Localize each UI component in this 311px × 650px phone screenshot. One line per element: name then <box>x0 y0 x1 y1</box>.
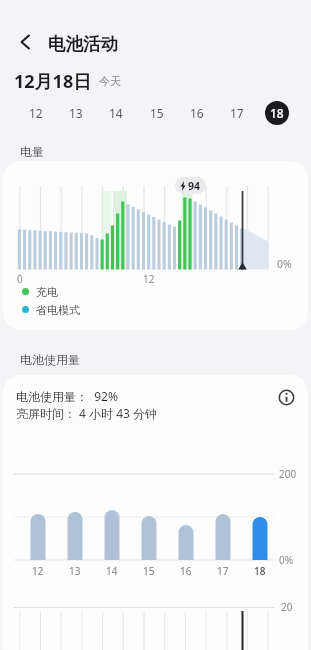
staticText: 0% <box>279 553 294 567</box>
staticText: 今天 <box>99 74 121 88</box>
staticText: 12 <box>29 105 43 121</box>
button[interactable]: 18 <box>265 101 289 125</box>
staticText: 15 <box>150 105 164 121</box>
button[interactable]: 14 <box>100 101 132 125</box>
staticText: 18 <box>270 105 284 121</box>
staticText: 13 <box>69 105 83 121</box>
staticText: 0% <box>277 257 292 271</box>
staticText: 18 <box>254 564 266 578</box>
staticText: 省电模式 <box>36 303 80 317</box>
staticText: 14 <box>109 105 123 121</box>
button[interactable]: 16 <box>181 101 213 125</box>
staticText: 0 <box>17 272 23 286</box>
staticText: 20 <box>281 600 293 614</box>
button[interactable]: 15 <box>141 101 173 125</box>
staticText: 15 <box>143 564 155 578</box>
staticText: 电池活动 <box>48 33 118 55</box>
staticText: 电池使用量 <box>20 352 80 367</box>
staticText: 16 <box>180 564 192 578</box>
button[interactable]: 13 <box>60 101 92 125</box>
staticText: 14 <box>106 564 118 578</box>
button[interactable]: 17 <box>221 101 253 125</box>
staticText: 12月18日 <box>14 69 92 94</box>
staticText: 200 <box>279 467 297 481</box>
button[interactable] <box>277 388 296 407</box>
staticText: 13 <box>69 564 81 578</box>
staticText: 12 <box>143 272 155 286</box>
staticText: 充电 <box>36 285 58 299</box>
button[interactable] <box>10 27 40 57</box>
staticText: 亮屏时间： 4 小时 43 分钟 <box>16 405 158 421</box>
button[interactable]: 12 <box>20 101 52 125</box>
staticText: 17 <box>230 105 244 121</box>
staticText: 16 <box>190 105 204 121</box>
staticText: 12 <box>32 564 44 578</box>
staticText: 94 <box>188 179 201 193</box>
staticText: 电池使用量： 92% <box>16 388 118 404</box>
staticText: 电量 <box>20 144 44 159</box>
staticText: 17 <box>217 564 229 578</box>
